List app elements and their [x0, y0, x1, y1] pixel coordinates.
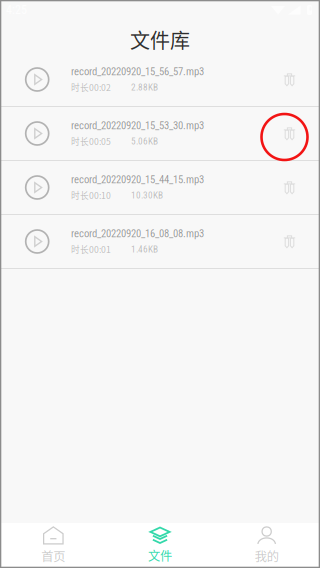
staticText: 时长00:02 — [71, 81, 111, 93]
staticText: 时长00:05 — [71, 135, 111, 147]
button[interactable]: 首页 — [0, 523, 107, 568]
button[interactable]: Delete — [267, 215, 311, 268]
button[interactable]: Delete — [267, 161, 311, 214]
staticText: 首页 — [41, 547, 65, 565]
staticText: 10.30KB — [131, 190, 163, 201]
staticText: record_20220920_16_08_08.mp3 — [71, 227, 204, 240]
staticText: 5.06KB — [131, 136, 158, 147]
button[interactable]: Play — [3, 53, 71, 106]
staticText: record_20220920_15_53_30.mp3 — [71, 119, 204, 132]
button[interactable]: Delete — [267, 53, 311, 106]
staticText: 文件 — [148, 547, 172, 564]
staticText: record_20220920_15_44_15.mp3 — [71, 173, 204, 186]
staticText: 1.46KB — [131, 244, 158, 255]
staticText: 文件库 — [130, 25, 190, 54]
staticText: 时长00:01 — [71, 243, 111, 255]
button[interactable]: 文件 — [107, 523, 213, 568]
button[interactable]: Delete — [267, 107, 311, 160]
staticText: 我的 — [255, 547, 279, 565]
button[interactable]: Play — [3, 107, 71, 160]
staticText: record_20220920_15_56_57.mp3 — [71, 65, 204, 78]
button[interactable]: Play — [3, 161, 71, 214]
staticText: 时长00:10 — [71, 189, 111, 201]
staticText: 2.88KB — [131, 82, 158, 93]
button[interactable]: 我的 — [213, 523, 320, 568]
button[interactable]: Play — [3, 215, 71, 268]
